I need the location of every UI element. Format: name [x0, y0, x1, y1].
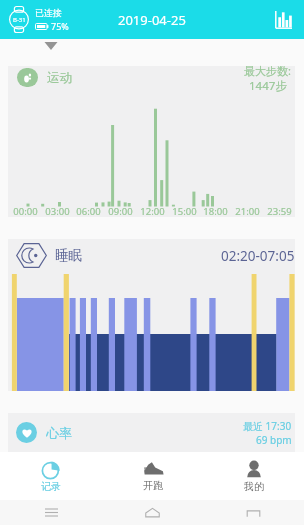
staticText: 我的 [244, 480, 264, 493]
button[interactable]: 我的 [203, 452, 304, 500]
staticText: 69 bpm [256, 433, 292, 447]
staticText: 15:00 [172, 205, 197, 218]
staticText: 已连接 [35, 7, 62, 18]
staticText: 06:00 [76, 205, 101, 218]
button[interactable]: Back [203, 500, 304, 525]
button[interactable]: Home [102, 500, 203, 525]
staticText: 18:00 [203, 205, 228, 218]
staticText: 02:20-07:05 [221, 247, 295, 265]
staticText: 1447步 [249, 78, 287, 92]
staticText: 记录 [41, 480, 61, 493]
staticText: 21:00 [235, 205, 260, 218]
staticText: 00:00 [13, 205, 38, 218]
staticText: 心率 [46, 425, 72, 441]
button[interactable]: Menu [0, 500, 102, 525]
staticText: 03:00 [45, 205, 70, 218]
button[interactable]: Statistics [268, 5, 298, 35]
button[interactable]: B-31 [0, 0, 77, 39]
button[interactable]: 睡眠 [8, 239, 295, 391]
button[interactable]: 运动 [8, 66, 295, 217]
staticText: 2019-04-25 [118, 11, 186, 29]
staticText: 09:00 [108, 205, 133, 218]
staticText: 运动 [47, 70, 72, 86]
staticText: 75% [51, 20, 69, 32]
staticText: B-31 [13, 16, 26, 24]
button[interactable]: 开跑 [102, 452, 203, 500]
staticText: 23:59 [267, 205, 292, 218]
button[interactable]: 心率 [8, 413, 295, 452]
staticText: 最大步数: [244, 63, 291, 78]
staticText: 12:00 [140, 205, 165, 218]
staticText: 最近 17:30 [243, 419, 292, 433]
button[interactable]: 记录 [0, 452, 102, 500]
staticText: 睡眠 [55, 247, 82, 264]
staticText: 开跑 [143, 479, 163, 492]
